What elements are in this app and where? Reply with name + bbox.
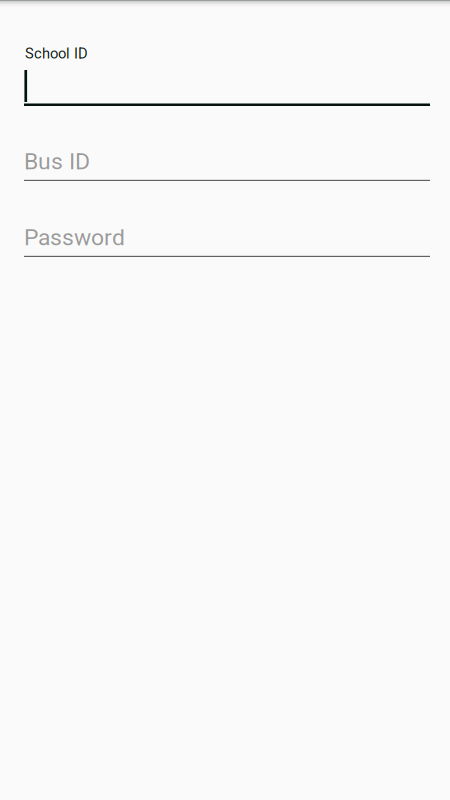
staticText: Bus ID (24, 148, 90, 175)
staticText: School ID (25, 45, 88, 62)
button[interactable]: Bus ID (24, 152, 430, 196)
button[interactable]: School ID (24, 47, 430, 109)
staticText: Password (24, 224, 125, 251)
button[interactable]: Password (24, 228, 430, 272)
